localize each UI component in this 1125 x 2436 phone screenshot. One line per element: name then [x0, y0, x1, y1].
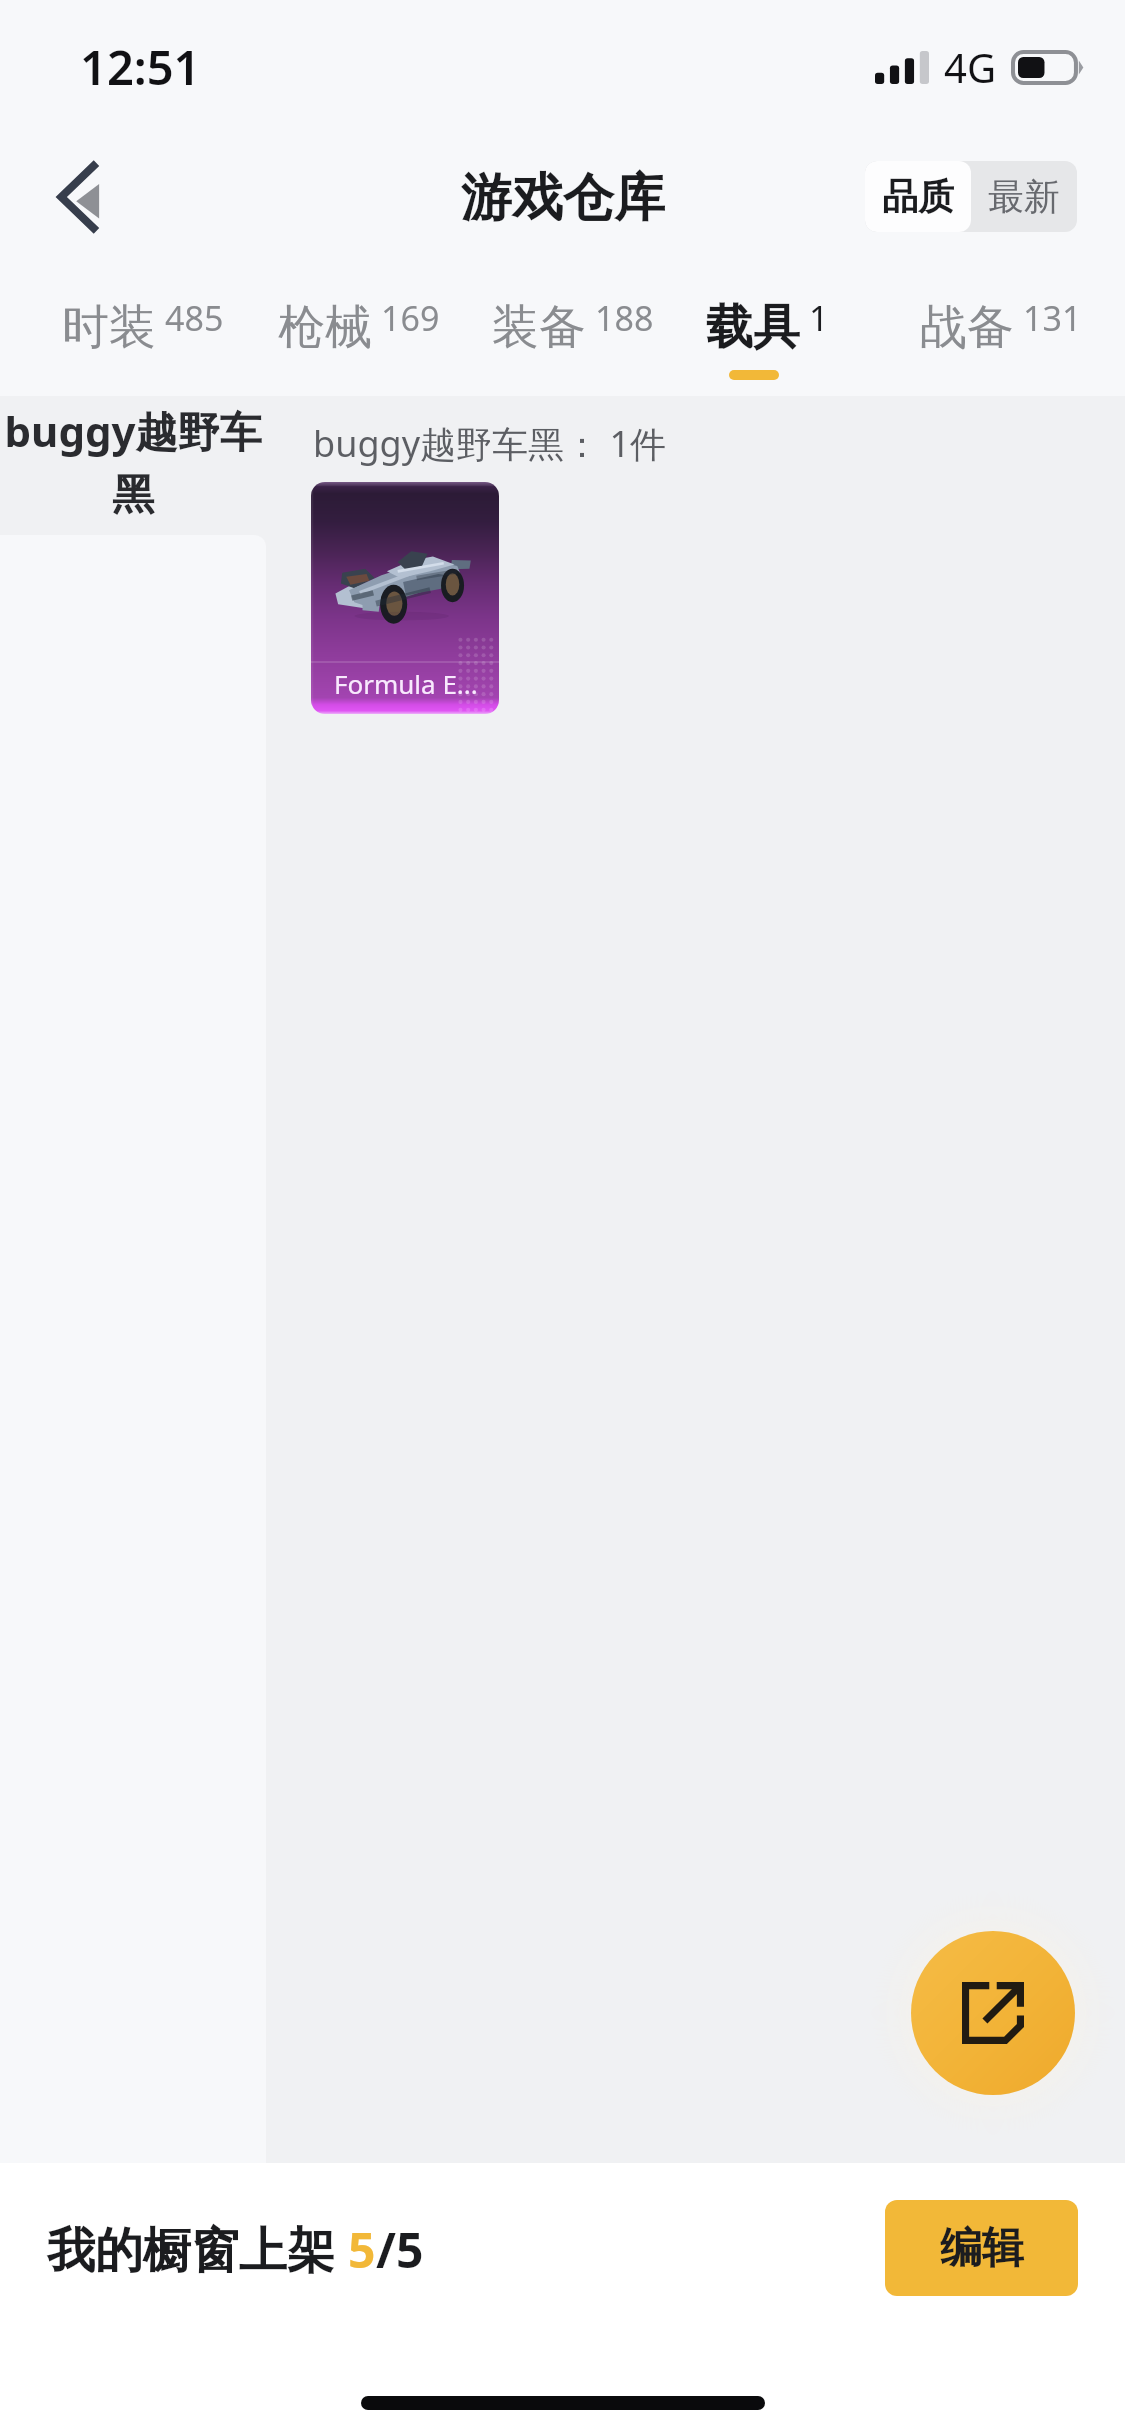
staticText: 编辑 — [940, 2222, 1024, 2275]
button[interactable]: buggy越野车黑 — [0, 396, 266, 535]
staticText: buggy越野车黑： 1件 — [313, 419, 666, 468]
button[interactable]: Formula E... — [311, 482, 499, 714]
staticText: 4G — [944, 40, 996, 94]
staticText: Formula E... — [334, 666, 478, 701]
staticText: 12:51 — [80, 35, 201, 99]
staticText: 战备 — [920, 298, 1014, 357]
staticText: 131 — [1023, 295, 1082, 341]
button[interactable]: 枪械 — [262, 282, 440, 390]
button[interactable]: 时装 — [46, 282, 224, 390]
button[interactable]: Back — [30, 152, 126, 242]
button[interactable]: 装备 — [476, 282, 654, 390]
staticText: 最新 — [988, 174, 1060, 219]
staticText: 我的橱窗上架 — [47, 2216, 348, 2282]
staticText: 1 — [809, 295, 829, 341]
staticText: 装备 — [492, 298, 586, 357]
staticText: 枪械 — [278, 298, 372, 357]
button[interactable]: Open store page — [911, 1931, 1075, 2095]
staticText: buggy越野车黑 — [0, 402, 266, 522]
button[interactable]: 战备 — [904, 282, 1082, 390]
button[interactable]: 编辑 — [885, 2200, 1078, 2296]
staticText: 169 — [381, 295, 440, 341]
button[interactable]: 载具 — [690, 282, 829, 390]
button[interactable]: 最新 — [971, 161, 1077, 232]
staticText: 时装 — [62, 298, 156, 357]
staticText: 品质 — [882, 174, 954, 219]
staticText: 游戏仓库 — [461, 166, 665, 230]
staticText: 5 — [348, 2217, 376, 2282]
staticText: 载具 — [706, 298, 800, 357]
staticText: /5 — [376, 2217, 424, 2282]
staticText: 188 — [595, 295, 654, 341]
button[interactable]: 品质 — [865, 161, 971, 232]
staticText: 485 — [165, 295, 224, 341]
